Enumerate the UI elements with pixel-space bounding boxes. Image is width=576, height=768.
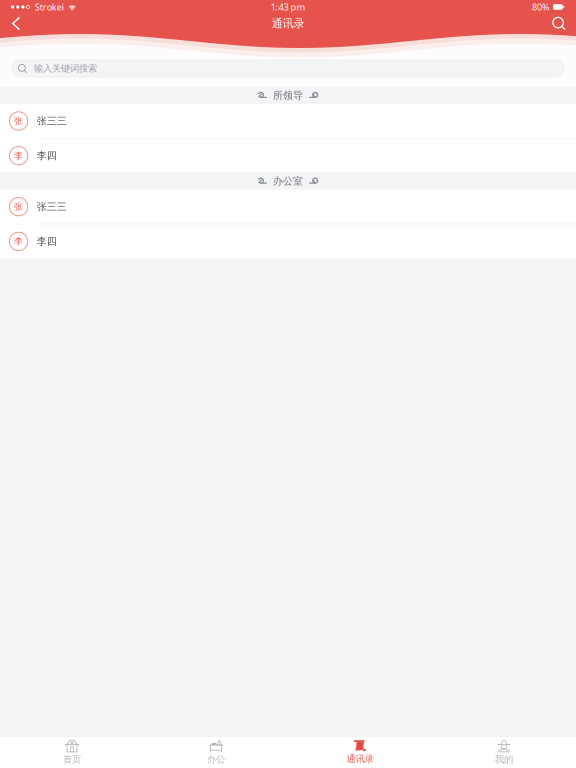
button[interactable]: 张 <box>0 104 576 138</box>
staticText: 李四 <box>37 235 57 248</box>
button[interactable]: 李 <box>0 139 576 173</box>
button[interactable]: 张 <box>0 190 576 224</box>
staticText: Strokei <box>35 1 64 13</box>
staticText: 张 <box>14 201 23 212</box>
button[interactable]: Back <box>3 11 29 35</box>
button[interactable]: 李 <box>0 224 576 258</box>
staticText: 张三三 <box>37 200 67 213</box>
staticText: 首页 <box>63 754 81 765</box>
staticText: 通讯录 <box>271 16 304 31</box>
button[interactable]: 办公 <box>144 736 288 768</box>
staticText: 所领导 <box>273 89 303 102</box>
staticText: 1:43 pm <box>270 1 305 13</box>
staticText: 通讯录 <box>346 753 373 765</box>
staticText: 80% <box>532 1 550 13</box>
button[interactable]: 输入关键词搜索 <box>12 60 564 77</box>
staticText: 我的 <box>495 754 513 765</box>
staticText: 办公 <box>207 754 225 765</box>
staticText: 输入关键词搜索 <box>34 63 97 74</box>
staticText: 办公室 <box>273 175 303 187</box>
button[interactable]: 我的 <box>432 736 576 768</box>
button[interactable]: Search <box>547 11 573 35</box>
staticText: 李 <box>14 236 23 247</box>
staticText: 张三三 <box>37 115 67 127</box>
staticText: 李四 <box>37 149 57 162</box>
staticText: 李 <box>14 150 23 161</box>
staticText: 张 <box>14 115 23 127</box>
button[interactable]: 首页 <box>0 736 144 768</box>
button[interactable]: 通讯录 <box>288 736 432 768</box>
